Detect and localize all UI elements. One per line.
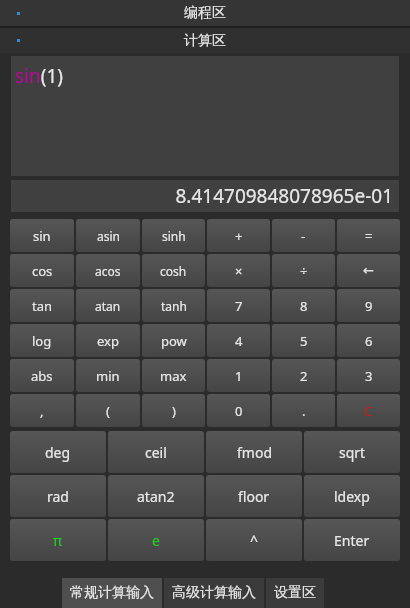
staticText: × [235, 262, 243, 280]
staticText: min [96, 367, 120, 385]
button[interactable]: 9 [337, 289, 400, 322]
button[interactable]: Section marker [0, 28, 410, 53]
button[interactable]: 1 [207, 359, 270, 392]
button[interactable]: 8.414709848078965e-01 [11, 180, 399, 212]
button[interactable]: 设置区 [266, 578, 324, 608]
staticText: = [365, 227, 373, 245]
staticText: ceil [145, 443, 167, 462]
staticText: acos [95, 263, 121, 279]
staticText: pow [161, 332, 187, 350]
staticText: 计算区 [184, 32, 226, 50]
staticText: ldexp [334, 487, 370, 506]
staticText: + [235, 227, 243, 245]
button[interactable]: ÷ [272, 254, 335, 287]
staticText: ← [363, 263, 374, 278]
button[interactable]: ) [142, 394, 205, 427]
button[interactable]: deg [10, 431, 106, 473]
button[interactable]: cos [10, 254, 74, 287]
button[interactable]: sin [10, 219, 74, 252]
staticText: 8.414709848078965e-01 [175, 183, 393, 209]
staticText: asin [97, 228, 120, 244]
staticText: 6 [365, 332, 373, 350]
staticText: π [53, 531, 63, 550]
staticText: 8 [300, 297, 308, 315]
staticText: tanh [161, 298, 187, 314]
staticText: 9 [365, 297, 373, 315]
button[interactable]: ceil [108, 431, 204, 473]
staticText: sin [33, 227, 51, 245]
button[interactable]: e [108, 519, 204, 561]
button[interactable]: Section marker [0, 0, 410, 26]
button[interactable]: . [272, 394, 335, 427]
staticText: exp [97, 332, 119, 350]
button[interactable]: × [207, 254, 270, 287]
staticText: ÷ [300, 262, 308, 280]
staticText: atan [95, 298, 121, 314]
button[interactable]: 8 [272, 289, 335, 322]
button[interactable]: + [207, 219, 270, 252]
staticText: e [152, 531, 160, 550]
staticText: sqrt [339, 443, 366, 462]
staticText: log [32, 332, 52, 350]
staticText: cos [32, 262, 53, 280]
button[interactable]: sinh [142, 219, 205, 252]
button[interactable]: 5 [272, 324, 335, 357]
button[interactable]: 0 [207, 394, 270, 427]
staticText: 4 [235, 332, 243, 350]
button[interactable]: fmod [206, 431, 302, 473]
button[interactable]: ( [76, 394, 140, 427]
staticText: cosh [160, 263, 187, 279]
button[interactable]: log [10, 324, 74, 357]
button[interactable]: , [10, 394, 74, 427]
button[interactable]: 常规计算输入 [62, 578, 162, 608]
staticText: sin(1) [15, 63, 64, 89]
button[interactable]: ldexp [304, 475, 400, 517]
button[interactable]: π [10, 519, 106, 561]
staticText: tan [32, 297, 53, 315]
button[interactable]: 2 [272, 359, 335, 392]
staticText: Enter [334, 531, 370, 550]
button[interactable]: min [76, 359, 140, 392]
button[interactable]: tanh [142, 289, 205, 322]
staticText: ) [172, 402, 176, 420]
staticText: fmod [237, 443, 272, 462]
button[interactable]: ^ [206, 519, 302, 561]
staticText: floor [238, 487, 270, 506]
button[interactable]: - [272, 219, 335, 252]
button[interactable]: sin(1) [11, 56, 399, 176]
button[interactable]: floor [206, 475, 302, 517]
staticText: ^ [250, 531, 259, 550]
button[interactable]: atan [76, 289, 140, 322]
staticText: , [40, 402, 44, 420]
button[interactable]: max [142, 359, 205, 392]
button[interactable]: C [337, 394, 400, 427]
staticText: deg [45, 443, 71, 462]
staticText: rad [47, 487, 69, 506]
staticText: - [301, 227, 306, 245]
button[interactable]: cosh [142, 254, 205, 287]
staticText: 高级计算输入 [172, 584, 256, 602]
button[interactable]: tan [10, 289, 74, 322]
button[interactable]: atan2 [108, 475, 204, 517]
button[interactable]: sqrt [304, 431, 400, 473]
staticText: 3 [365, 367, 373, 385]
staticText: 1 [235, 367, 243, 385]
button[interactable]: 高级计算输入 [164, 578, 264, 608]
button[interactable]: 4 [207, 324, 270, 357]
button[interactable]: = [337, 219, 400, 252]
staticText: max [160, 367, 187, 385]
button[interactable]: 6 [337, 324, 400, 357]
button[interactable]: pow [142, 324, 205, 357]
button[interactable]: abs [10, 359, 74, 392]
button[interactable]: 3 [337, 359, 400, 392]
staticText: atan2 [137, 487, 175, 506]
button[interactable]: exp [76, 324, 140, 357]
button[interactable]: rad [10, 475, 106, 517]
button[interactable]: Enter [304, 519, 400, 561]
button[interactable]: acos [76, 254, 140, 287]
button[interactable]: 7 [207, 289, 270, 322]
button[interactable]: ← [337, 254, 400, 287]
button[interactable]: asin [76, 219, 140, 252]
